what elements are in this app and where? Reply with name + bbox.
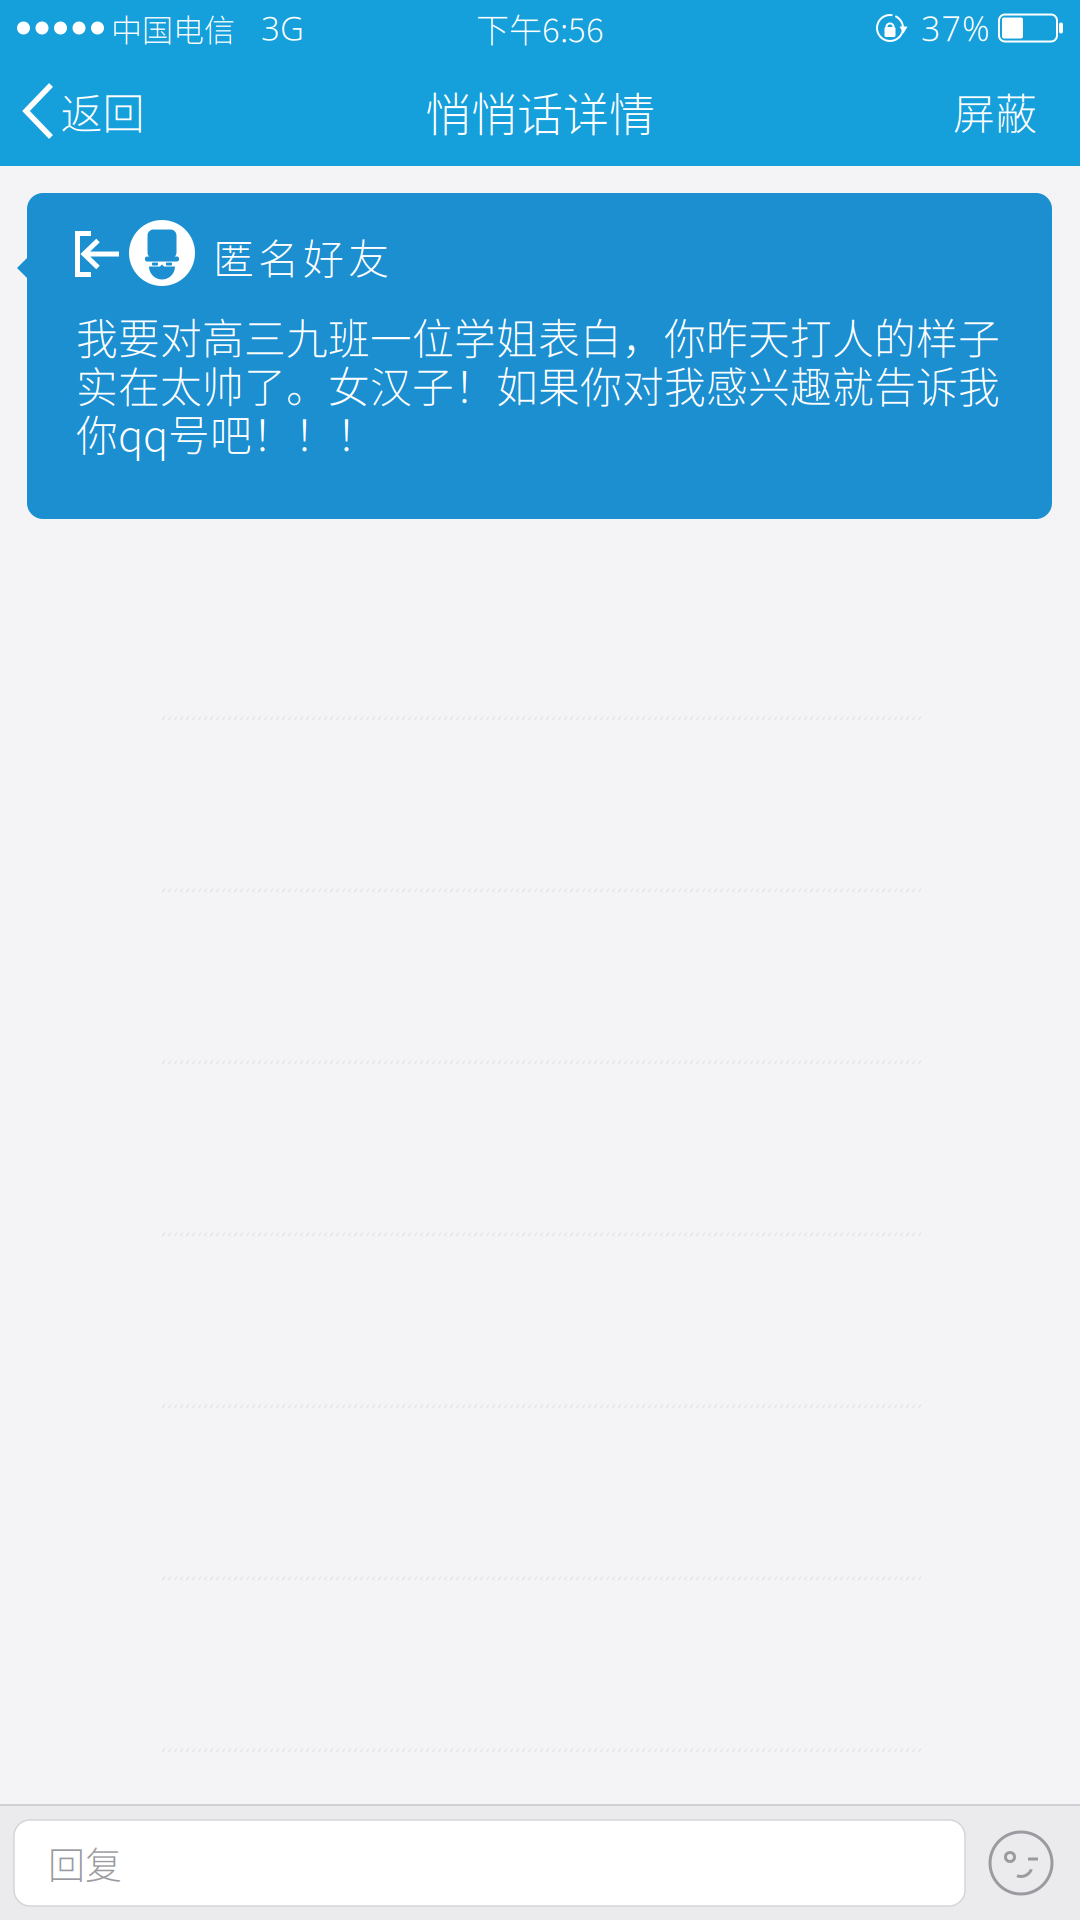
staticText: 我要对高三九班一位学姐表白，你昨天打人的样子实在太帅了。女汉子！如果你对我感兴趣… bbox=[76, 312, 1000, 457]
staticText: 3G bbox=[261, 8, 304, 48]
staticText: 中国电信 bbox=[111, 8, 235, 48]
button[interactable]: 返回 bbox=[0, 56, 174, 166]
staticText: 回复 bbox=[48, 1839, 122, 1887]
staticText: 匿名好友 bbox=[213, 229, 389, 283]
button[interactable]: Emoji bbox=[989, 1831, 1053, 1895]
button[interactable]: 回复 bbox=[14, 1820, 965, 1906]
staticText: 返回 bbox=[60, 84, 144, 138]
staticText: 37% bbox=[921, 7, 990, 49]
staticText: 下午6:56 bbox=[476, 6, 604, 49]
staticText: 悄悄话详情 bbox=[425, 81, 655, 141]
button[interactable]: 屏蔽 bbox=[913, 56, 1080, 166]
staticText: 屏蔽 bbox=[953, 84, 1037, 138]
button[interactable]: 匿名好友 bbox=[27, 193, 1052, 519]
